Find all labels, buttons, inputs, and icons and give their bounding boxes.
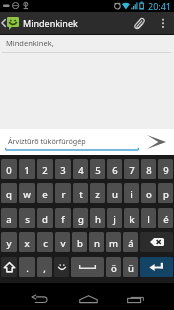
button[interactable]: p [158, 183, 173, 203]
staticText: d [42, 213, 48, 226]
staticText: Árvíztűrő tükörfúrógép [8, 136, 86, 146]
button[interactable]: Enter [140, 257, 173, 277]
button[interactable]: Send [139, 129, 174, 155]
button[interactable]: a [1, 208, 17, 228]
button[interactable]: Árvíztűrő tükörfúrógép [5, 129, 139, 155]
button[interactable]: m [106, 232, 121, 252]
staticText: Mindenkinek [23, 17, 78, 29]
staticText: é [163, 213, 169, 226]
button[interactable]: Attach [126, 12, 152, 34]
button[interactable]: 3 [55, 159, 71, 179]
button[interactable]: l [141, 208, 156, 228]
button[interactable]: 0 [1, 159, 17, 179]
button[interactable]: i [124, 183, 139, 203]
staticText: u [112, 188, 118, 201]
button[interactable]: Emoji [54, 257, 69, 277]
button[interactable]: á [123, 232, 138, 252]
staticText: n [94, 237, 100, 250]
staticText: 7 [129, 164, 135, 177]
staticText: l [147, 213, 150, 226]
button[interactable]: t [73, 183, 88, 203]
button[interactable]: 8 [141, 159, 156, 179]
staticText: w [23, 188, 31, 201]
button[interactable]: Navigate up [0, 12, 23, 34]
button[interactable]: 6 [107, 159, 122, 179]
staticText: e [42, 188, 48, 201]
staticText: g [78, 213, 84, 226]
button[interactable]: Space [71, 257, 104, 277]
button[interactable]: b [72, 232, 87, 252]
staticText: ü [128, 262, 134, 275]
button[interactable]: 2 [37, 159, 53, 179]
button[interactable]: v [55, 232, 70, 252]
button[interactable]: g [73, 208, 88, 228]
staticText: x [24, 237, 30, 250]
button[interactable]: j [107, 208, 122, 228]
staticText: s [25, 213, 30, 226]
staticText: á [128, 237, 134, 250]
button[interactable]: r [55, 183, 71, 203]
button[interactable]: h [90, 208, 105, 228]
button[interactable]: x [19, 232, 35, 252]
staticText: k [129, 213, 135, 226]
button[interactable]: Recent apps [112, 283, 159, 310]
staticText: v [60, 237, 66, 250]
staticText: y [6, 237, 12, 250]
button[interactable]: é [158, 208, 173, 228]
button[interactable]: s [19, 208, 35, 228]
button[interactable]: ö [106, 257, 121, 277]
button[interactable]: n [89, 232, 104, 252]
button[interactable]: 9 [158, 159, 173, 179]
staticText: a [6, 213, 12, 226]
staticText: q [6, 188, 12, 201]
button[interactable]: Backspace [140, 232, 173, 252]
staticText: 5 [95, 164, 101, 177]
button[interactable]: w [19, 183, 35, 203]
button[interactable]: Home [64, 283, 112, 310]
staticText: t [79, 188, 83, 201]
staticText: m [109, 237, 118, 250]
other: Navigate up [0, 12, 7, 34]
staticText: f [61, 213, 65, 226]
button[interactable]: d [37, 208, 53, 228]
button[interactable]: ü [123, 257, 138, 277]
staticText: j [113, 213, 116, 226]
button[interactable]: 4 [73, 159, 88, 179]
button[interactable]: y [1, 232, 17, 252]
button[interactable]: o [141, 183, 156, 203]
staticText: 2 [42, 164, 48, 177]
staticText: . [26, 262, 29, 275]
button[interactable]: z [90, 183, 105, 203]
button[interactable]: . [19, 257, 35, 277]
staticText: 6 [112, 164, 118, 177]
button[interactable]: k [124, 208, 139, 228]
staticText: h [95, 213, 101, 226]
staticText: p [163, 188, 169, 201]
button[interactable]: q [1, 183, 17, 203]
staticText: r [61, 188, 66, 201]
button[interactable]: More options [152, 12, 174, 34]
staticText: 20:41 [148, 0, 172, 12]
staticText: o [146, 188, 152, 201]
staticText: 9 [163, 164, 169, 177]
button[interactable]: c [37, 232, 53, 252]
staticText: ö [111, 262, 117, 275]
button[interactable]: e [37, 183, 53, 203]
staticText: 1 [24, 164, 30, 177]
button[interactable]: Shift [1, 257, 17, 277]
staticText: z [95, 188, 100, 201]
staticText: 0 [6, 164, 12, 177]
button[interactable]: f [55, 208, 71, 228]
button[interactable]: 5 [90, 159, 105, 179]
staticText: 4 [78, 164, 84, 177]
button[interactable]: 7 [124, 159, 139, 179]
staticText: 3 [60, 164, 66, 177]
button[interactable]: 1 [19, 159, 35, 179]
button[interactable]: , [37, 257, 52, 277]
staticText: Mindenkinek, [6, 38, 54, 48]
button[interactable]: u [107, 183, 122, 203]
staticText: , [43, 262, 46, 275]
staticText: i [130, 188, 133, 201]
staticText: b [77, 237, 83, 250]
button[interactable]: Back [16, 283, 63, 310]
